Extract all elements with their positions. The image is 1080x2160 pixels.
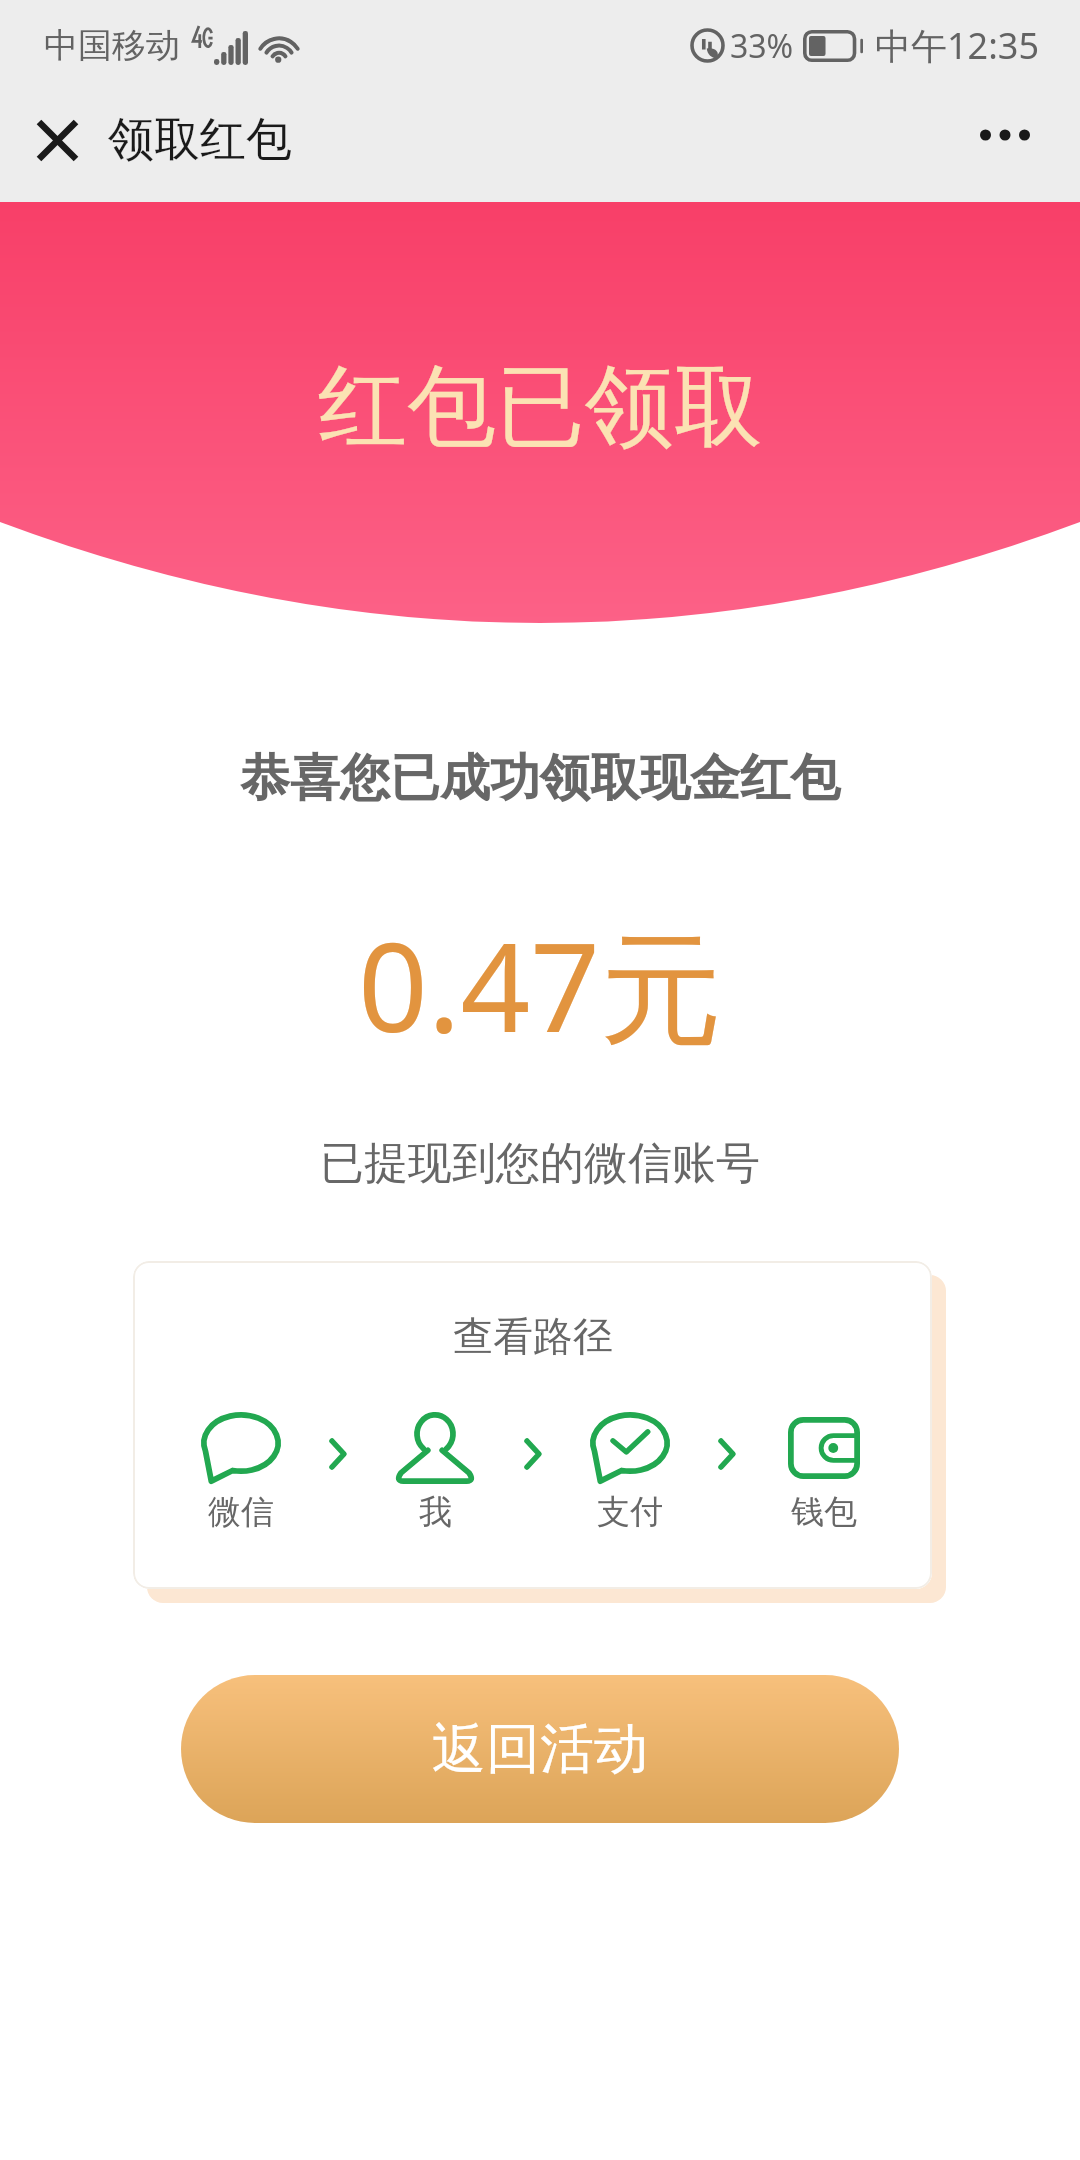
staticText: 支付 bbox=[597, 1491, 663, 1533]
staticText: 0.47元 bbox=[0, 902, 1080, 1069]
staticText: 钱包 bbox=[791, 1491, 857, 1533]
staticText: 微信 bbox=[208, 1491, 274, 1533]
staticText: 查看路径 bbox=[453, 1311, 613, 1361]
staticText: 中国移动 bbox=[44, 24, 180, 67]
button[interactable]: 微信 bbox=[191, 1412, 291, 1533]
staticText: 已提现到您的微信账号 bbox=[0, 1136, 1080, 1191]
staticText: 领取红包 bbox=[108, 111, 292, 169]
staticText: 红包已领取 bbox=[318, 351, 763, 463]
staticText: 恭喜您已成功领取现金红包 bbox=[0, 747, 1080, 810]
staticText: 33% bbox=[730, 24, 794, 68]
staticText: 中午12:35 bbox=[875, 21, 1040, 70]
button[interactable]: More options bbox=[966, 91, 1076, 201]
button[interactable]: 钱包 bbox=[774, 1412, 874, 1533]
staticText: 返回活动 bbox=[432, 1715, 648, 1783]
staticText: 我 bbox=[419, 1491, 452, 1533]
button[interactable]: 支付 bbox=[580, 1412, 680, 1533]
button[interactable]: 我 bbox=[385, 1412, 485, 1533]
button[interactable]: 返回活动 bbox=[181, 1675, 899, 1823]
button[interactable]: Close bbox=[0, 90, 112, 202]
